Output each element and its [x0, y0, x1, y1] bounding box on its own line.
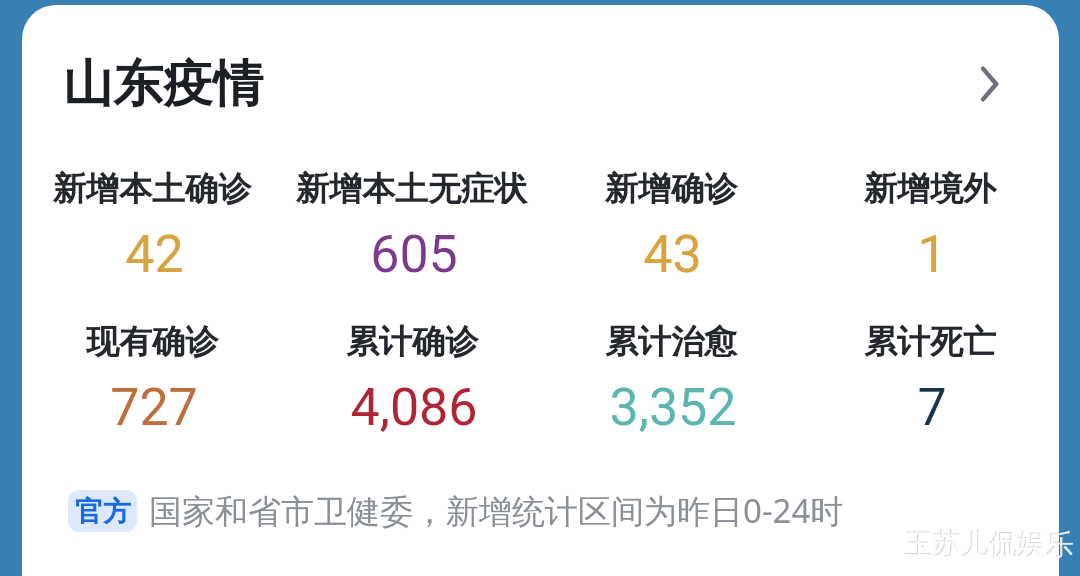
staticText: 4,086: [350, 377, 478, 438]
staticText: 官方: [75, 494, 131, 529]
staticText: 玉苏儿侃娱乐: [905, 526, 1073, 561]
button[interactable]: 新增本土无症状: [282, 168, 541, 285]
staticText: 累计治愈: [605, 321, 737, 363]
staticText: 605: [370, 224, 458, 285]
staticText: 山东疫情: [63, 53, 263, 116]
button[interactable]: 累计治愈: [541, 321, 800, 438]
staticText: 玉苏儿侃娱乐: [906, 527, 1074, 562]
staticText: 新增境外: [864, 168, 996, 210]
staticText: 新增本土无症状: [296, 168, 527, 210]
button[interactable]: 累计确诊: [282, 321, 541, 438]
staticText: 累计确诊: [346, 321, 478, 363]
staticText: 现有确诊: [86, 321, 218, 363]
staticText: 727: [110, 377, 198, 438]
other: More: [968, 62, 1012, 106]
staticText: 累计死亡: [864, 321, 996, 363]
staticText: 42: [125, 224, 184, 285]
button[interactable]: 新增境外: [800, 168, 1059, 285]
staticText: 43: [643, 224, 702, 285]
button[interactable]: 山东疫情: [22, 5, 1059, 135]
button[interactable]: 新增本土确诊: [22, 168, 282, 285]
button[interactable]: 现有确诊: [22, 321, 282, 438]
staticText: 7: [917, 377, 947, 438]
staticText: 国家和省市卫健委，新增统计区间为昨日0-24时: [149, 488, 844, 533]
button[interactable]: 累计死亡: [800, 321, 1059, 438]
staticText: 新增确诊: [605, 168, 737, 210]
button[interactable]: 新增确诊: [541, 168, 800, 285]
staticText: 新增本土确诊: [53, 168, 251, 210]
button[interactable]: 官方: [68, 490, 137, 532]
staticText: 1: [917, 224, 947, 285]
staticText: 3,352: [609, 377, 737, 438]
